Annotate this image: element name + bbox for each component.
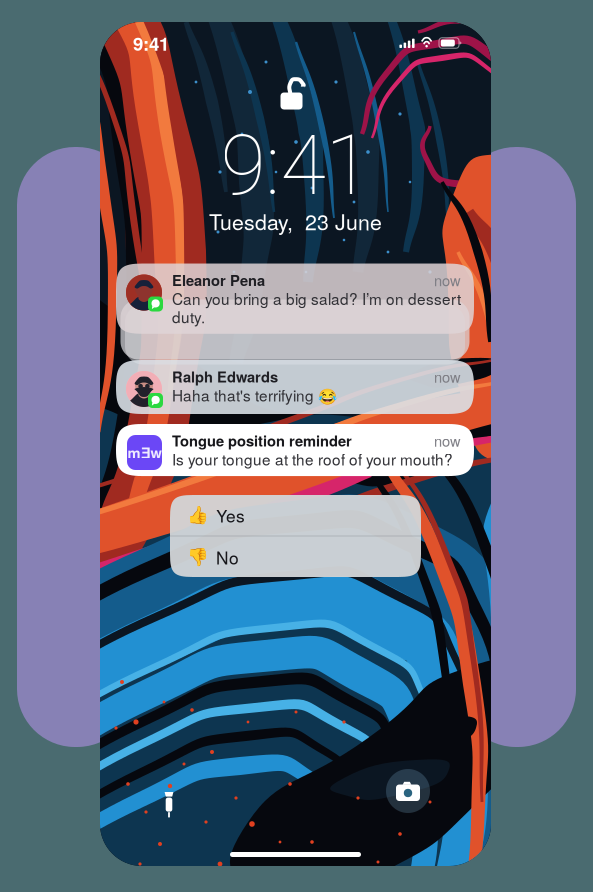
staticText: Ralph Edwards xyxy=(172,368,278,385)
staticText: 9:41 xyxy=(133,33,169,53)
staticText: Can you bring a big salad? I’m on desser… xyxy=(172,290,461,306)
button[interactable]: Ralph Edwards xyxy=(116,360,474,414)
staticText: now xyxy=(434,271,461,288)
staticText: duty. xyxy=(172,309,205,325)
button[interactable]: Camera xyxy=(386,769,430,813)
staticText: Eleanor Pena xyxy=(172,271,265,288)
staticText: Haha that's terrifying 😂 xyxy=(172,387,337,403)
staticText: Is your tongue at the roof of your mouth… xyxy=(172,451,453,467)
staticText: now xyxy=(434,432,461,449)
staticText: 👍 xyxy=(187,508,209,523)
button[interactable]: Eleanor Pena xyxy=(116,263,474,334)
staticText: 👎 xyxy=(187,549,209,564)
staticText: Yes xyxy=(216,506,245,524)
button[interactable]: Flashlight xyxy=(152,788,186,822)
button[interactable]: 👎 xyxy=(170,536,421,577)
button[interactable]: 👍 xyxy=(170,495,421,536)
staticText: now xyxy=(434,368,461,385)
staticText: No xyxy=(216,548,239,566)
staticText: 9:41 xyxy=(220,128,370,204)
button[interactable]: mƎw xyxy=(116,424,474,476)
staticText: Tongue position reminder xyxy=(172,432,352,449)
staticText: mƎw xyxy=(127,444,161,461)
staticText: Tuesday, 23 June xyxy=(209,209,382,234)
